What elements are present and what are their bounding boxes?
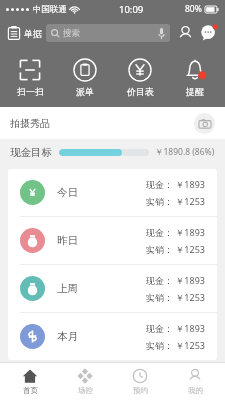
button[interactable]: Contacts	[177, 25, 194, 42]
button[interactable]: Messages	[200, 24, 218, 42]
staticText: 价目表	[127, 86, 154, 97]
staticText: 实销： ￥1253	[146, 195, 205, 207]
staticText: 拍摄秀品	[10, 117, 50, 130]
staticText: 今日	[57, 186, 78, 199]
button[interactable]: 昨日	[8, 217, 217, 264]
staticText: 上周	[57, 282, 78, 295]
button[interactable]: 单据	[7, 26, 46, 40]
button[interactable]: Camera	[194, 113, 215, 134]
staticText: 场控	[78, 386, 93, 395]
button[interactable]: 拍摄秀品	[0, 107, 225, 139]
button[interactable]: 价目表	[115, 56, 165, 99]
staticText: 现金： ￥1893	[146, 274, 205, 286]
button[interactable]: 今日	[8, 169, 217, 216]
staticText: 本月	[57, 330, 78, 343]
staticText: 10:09	[119, 3, 144, 16]
staticText: 单据	[24, 28, 42, 39]
staticText: 80%	[185, 3, 202, 15]
staticText: 派单	[76, 86, 94, 97]
button[interactable]: 搜索	[46, 24, 170, 42]
staticText: 实销： ￥1253	[146, 291, 205, 303]
staticText: 现金目标	[10, 146, 52, 159]
staticText: 首页	[23, 386, 38, 395]
button[interactable]: 派单	[60, 56, 110, 99]
staticText: 昨日	[57, 234, 78, 247]
staticText: 现金： ￥1893	[146, 226, 205, 238]
button[interactable]: 预约	[115, 368, 165, 395]
staticText: 实销： ￥1253	[146, 243, 205, 255]
staticText: 预约	[133, 386, 148, 395]
button[interactable]: 首页	[5, 368, 55, 395]
staticText: 提醒	[186, 86, 204, 97]
staticText: 现金： ￥1893	[146, 178, 205, 190]
staticText: 现金： ￥1893	[146, 322, 205, 334]
button[interactable]: 本月	[8, 313, 217, 360]
staticText: 中国联通	[33, 4, 67, 15]
button[interactable]: 扫一扫	[5, 56, 55, 99]
staticText: 我的	[188, 386, 203, 395]
button[interactable]: 场控	[60, 368, 110, 395]
staticText: 搜索	[63, 28, 80, 39]
button[interactable]: 提醒	[170, 56, 220, 99]
button[interactable]: 上周	[8, 265, 217, 312]
staticText: 扫一扫	[17, 86, 44, 97]
staticText: ￥1890.8 (86%)	[155, 146, 215, 158]
staticText: 实销： ￥1253	[146, 339, 205, 351]
button[interactable]: 我的	[170, 368, 220, 395]
